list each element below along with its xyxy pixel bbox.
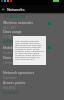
staticText: Wireless networks bbox=[3, 20, 33, 25]
staticText: Access points bbox=[3, 80, 26, 85]
button[interactable]: Mobile data bbox=[0, 45, 64, 55]
staticText: Wi-Fi, NFC bbox=[3, 26, 17, 30]
staticText: ADVANCED bbox=[3, 91, 20, 95]
staticText: CONNECTIONS bbox=[3, 15, 26, 19]
button[interactable]: Network operators bbox=[0, 70, 64, 80]
staticText: Networks bbox=[7, 7, 25, 12]
staticText: Your mobile operator may charge you extr… bbox=[15, 39, 44, 61]
staticText: Automatic bbox=[3, 76, 17, 80]
staticText: Data roaming bbox=[3, 55, 26, 60]
staticText: Edit APNs bbox=[3, 86, 16, 90]
staticText: Mobile data bbox=[3, 45, 23, 50]
button[interactable]: Access points bbox=[0, 80, 64, 90]
button[interactable]: Toggle setting bbox=[48, 46, 51, 49]
staticText: Network operators bbox=[3, 70, 35, 75]
button[interactable]: Data roaming bbox=[0, 55, 64, 65]
staticText: Connect to data bbox=[3, 61, 24, 65]
button[interactable]: Data usage bbox=[0, 29, 64, 39]
button[interactable]: Toggle setting bbox=[48, 22, 51, 25]
staticText: Enable data access bbox=[3, 51, 28, 55]
button[interactable]: Navigate up bbox=[0, 5, 7, 13]
staticText: Data usage bbox=[3, 29, 22, 34]
staticText: 2.4 GB used bbox=[3, 35, 19, 39]
staticText: NETWORK bbox=[3, 40, 19, 44]
button[interactable]: Wireless networks bbox=[0, 20, 64, 30]
